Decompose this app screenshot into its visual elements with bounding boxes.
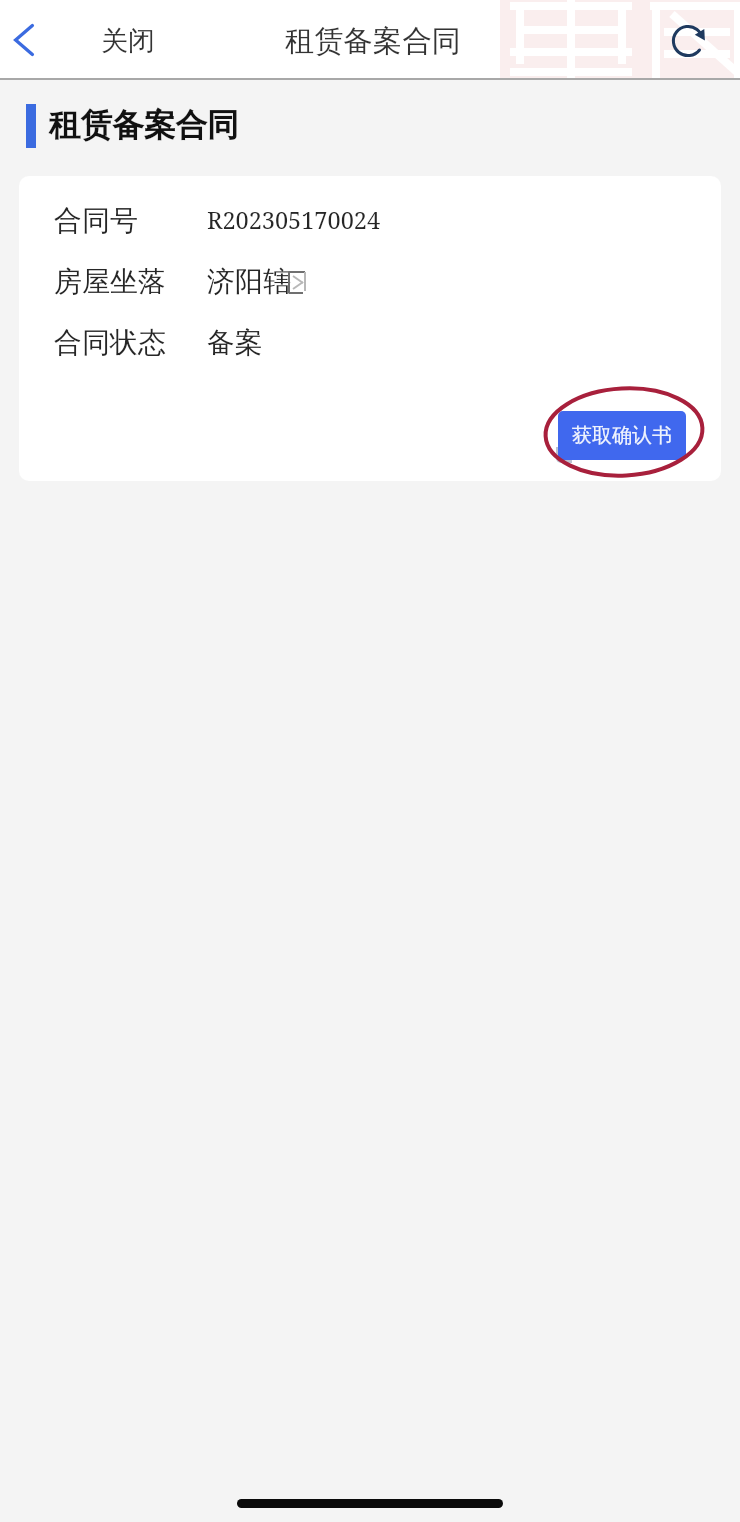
staticText: 房屋坐落 [54, 264, 166, 299]
button[interactable]: 关闭 [93, 14, 163, 68]
button[interactable]: Back [1, 17, 47, 63]
staticText: 合同号 [54, 203, 138, 238]
button[interactable]: Refresh [663, 16, 713, 66]
staticText: 合同状态 [54, 325, 166, 360]
staticText: 获取确认书 [572, 423, 672, 448]
staticText: 租赁备案合同 [49, 106, 239, 146]
staticText: 关闭 [101, 24, 155, 58]
staticText: 济阳辖 [207, 264, 291, 299]
button[interactable]: 获取确认书 [558, 411, 686, 460]
staticText: 备案 [207, 325, 263, 360]
staticText: 租赁备案合同 [285, 23, 461, 60]
staticText: R202305170024 [207, 204, 381, 236]
